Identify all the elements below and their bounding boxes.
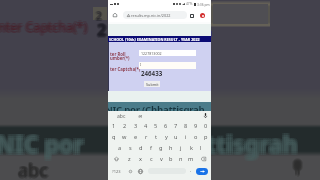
button[interactable]: 9 xyxy=(191,120,201,131)
button[interactable]: x xyxy=(135,153,146,164)
staticText: ttisgrah xyxy=(204,128,296,159)
button[interactable]: Enter xyxy=(196,168,208,175)
button[interactable]: Home xyxy=(111,11,119,19)
staticText: nter Captcha(*) xyxy=(0,19,86,36)
button[interactable]: u xyxy=(171,131,181,142)
staticText: NIC por xyxy=(0,128,82,159)
staticText: 2 xyxy=(96,9,103,24)
button[interactable]: I xyxy=(139,62,196,69)
staticText: NIC por xyxy=(0,128,86,159)
button[interactable]: 2 xyxy=(119,120,130,131)
staticText: y xyxy=(165,133,168,141)
button[interactable]: h xyxy=(166,142,176,153)
button[interactable]: 6 xyxy=(161,120,171,131)
button[interactable]: k xyxy=(186,142,196,153)
button[interactable]: 3 xyxy=(130,120,141,131)
staticText: 3 xyxy=(134,122,138,130)
staticText: nter Captcha(*) xyxy=(0,19,90,36)
staticText: NIC por xyxy=(0,126,82,157)
staticText: ttisgrah xyxy=(206,128,298,159)
staticText: NIC por xyxy=(0,130,86,161)
staticText: 2 xyxy=(95,7,102,22)
button[interactable]: o xyxy=(191,131,201,142)
staticText: b xyxy=(169,155,173,163)
staticText: n xyxy=(179,155,183,163)
button[interactable]: Backspace xyxy=(196,153,211,164)
staticText: i xyxy=(185,133,187,141)
button[interactable]: q xyxy=(108,131,119,142)
staticText: 7 xyxy=(174,122,178,130)
button[interactable]: y xyxy=(161,131,171,142)
button[interactable]: t xyxy=(151,131,161,142)
staticText: r xyxy=(145,133,148,141)
button[interactable]: v xyxy=(156,153,166,164)
button[interactable]: r xyxy=(141,131,151,142)
staticText: 2 xyxy=(96,8,103,23)
staticText: NIC por xyxy=(0,126,84,157)
button[interactable]: l xyxy=(196,142,206,153)
staticText: SCHOOL (10th) EXAMINATION RESULT - YEAR … xyxy=(109,37,200,42)
button[interactable]: 4 xyxy=(141,120,151,131)
staticText: I xyxy=(140,62,142,67)
staticText: nter Captcha(*) xyxy=(0,20,89,37)
button[interactable]: अ xyxy=(135,111,145,120)
staticText: ttisgrah xyxy=(206,126,298,157)
button[interactable]: 0 xyxy=(201,120,211,131)
button[interactable]: ?123 xyxy=(111,168,122,175)
staticText: अ xyxy=(138,113,142,118)
staticText: h xyxy=(169,144,173,152)
button[interactable]: b xyxy=(166,153,176,164)
button[interactable]: e xyxy=(130,131,141,142)
button[interactable]: g xyxy=(156,142,166,153)
button[interactable]: 5 xyxy=(151,120,161,131)
staticText: umber(*) xyxy=(110,55,130,61)
button[interactable]: j xyxy=(176,142,186,153)
button[interactable]: a xyxy=(114,142,125,153)
button[interactable]: z xyxy=(124,153,135,164)
staticText: 2 xyxy=(123,122,127,130)
button[interactable]: n xyxy=(176,153,186,164)
button[interactable]: i xyxy=(181,131,191,142)
staticText: s xyxy=(129,144,132,152)
staticText: ttisgrah xyxy=(206,130,298,161)
button[interactable]: results.mp.nic.in/2022 xyxy=(123,11,187,19)
button[interactable]: Menu xyxy=(199,12,206,19)
button[interactable]: Tabs xyxy=(188,12,195,19)
button[interactable]: c xyxy=(146,153,156,164)
staticText: . xyxy=(190,167,192,174)
button[interactable]: abc xyxy=(114,111,129,120)
staticText: NIC por xyxy=(0,128,84,159)
staticText: 2 xyxy=(96,20,106,42)
button[interactable]: p xyxy=(201,131,211,142)
button[interactable]: 8 xyxy=(181,120,191,131)
staticText: ttisgrah xyxy=(204,126,296,157)
staticText: 2 xyxy=(97,18,107,40)
staticText: nter Captcha(*) xyxy=(0,19,88,36)
staticText: ttisgrah xyxy=(204,130,296,161)
button[interactable]: 1227813002 xyxy=(139,50,196,56)
button[interactable]: Submit xyxy=(144,81,160,87)
button[interactable]: d xyxy=(136,142,146,153)
button[interactable]: w xyxy=(119,131,130,142)
staticText: ttisgrah xyxy=(208,126,300,157)
staticText: 9 xyxy=(194,122,198,130)
staticText: f xyxy=(150,144,152,152)
button[interactable]: Change language xyxy=(137,168,143,174)
staticText: k xyxy=(190,144,193,152)
staticText: abc xyxy=(18,158,48,180)
staticText: 2 xyxy=(97,19,107,41)
button[interactable]: 1 xyxy=(108,120,119,131)
staticText: j xyxy=(180,144,182,152)
button[interactable]: Voice input xyxy=(202,112,209,119)
button[interactable]: Emoji xyxy=(127,168,133,174)
staticText: abc xyxy=(19,159,49,180)
staticText: ter Roll xyxy=(110,51,126,57)
button[interactable]: s xyxy=(125,142,136,153)
button[interactable]: 7 xyxy=(171,120,181,131)
button[interactable]: f xyxy=(146,142,156,153)
button[interactable]: Shift xyxy=(108,153,124,164)
staticText: m xyxy=(188,155,194,163)
staticText: 2 xyxy=(98,18,108,40)
button[interactable]: m xyxy=(186,153,196,164)
